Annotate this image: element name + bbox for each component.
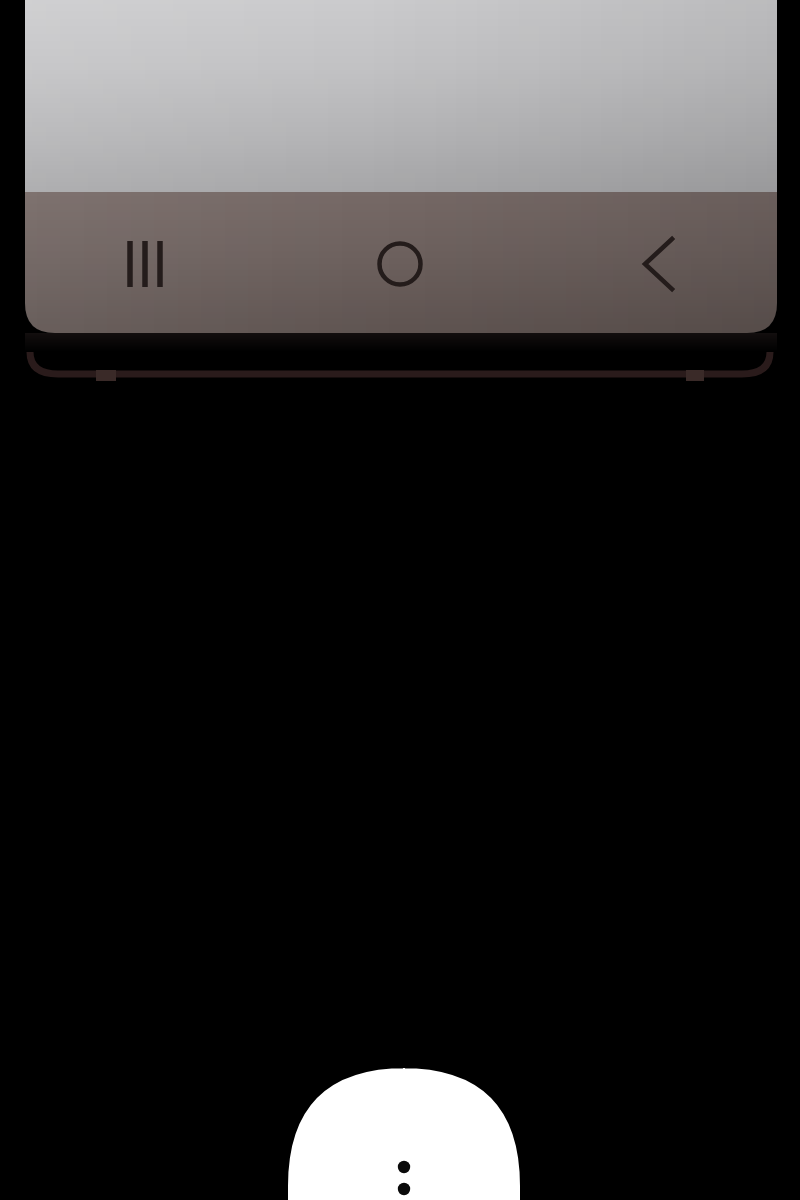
button[interactable]: More options xyxy=(378,1146,430,1200)
button[interactable]: Home xyxy=(343,200,457,328)
button[interactable] xyxy=(288,1068,520,1200)
button[interactable]: Back xyxy=(601,200,715,328)
button[interactable]: Recent apps xyxy=(88,200,202,328)
